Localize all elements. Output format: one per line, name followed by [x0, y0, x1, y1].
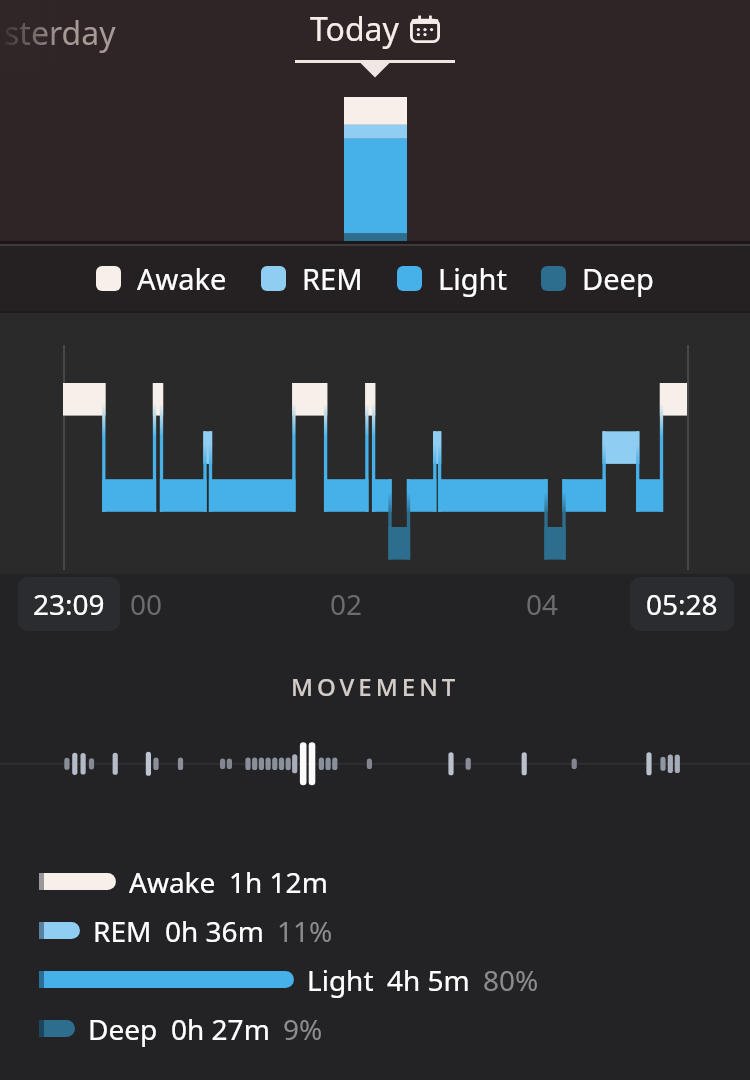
staticText: 23:09 [33, 585, 105, 623]
button[interactable]: Today [289, 7, 461, 78]
staticText: Deep [582, 259, 654, 298]
button[interactable]: Light [0, 955, 750, 1004]
other: Pick date [410, 15, 440, 43]
staticText: REM [302, 259, 363, 298]
staticText: 1h 12m [229, 863, 328, 901]
staticText: Awake [129, 863, 216, 901]
staticText: Awake [137, 259, 227, 298]
button[interactable]: REM [0, 906, 750, 955]
button[interactable]: 23:09 [18, 577, 120, 631]
staticText: 05:28 [646, 585, 718, 623]
staticText: Light [438, 259, 507, 298]
staticText: 80% [483, 961, 539, 999]
button[interactable]: Deep [541, 259, 654, 298]
staticText: 9% [283, 1010, 323, 1048]
staticText: Deep [88, 1010, 158, 1048]
staticText: 0h 27m [171, 1010, 270, 1048]
staticText: 02 [330, 585, 363, 623]
button[interactable]: REM [261, 259, 363, 298]
staticText: Today [310, 7, 399, 51]
button[interactable]: 05:28 [630, 577, 734, 631]
staticText: 11% [277, 912, 333, 950]
staticText: 0h 36m [165, 912, 264, 950]
staticText: Light [307, 961, 374, 999]
staticText: MOVEMENT [291, 670, 460, 703]
button[interactable]: Awake [96, 259, 227, 298]
staticText: REM [93, 912, 152, 950]
button[interactable]: Light [397, 259, 507, 298]
button[interactable]: Deep [0, 1004, 750, 1053]
staticText: 4h 5m [387, 961, 470, 999]
staticText: sterday [4, 11, 116, 55]
staticText: 04 [526, 585, 559, 623]
button[interactable]: Awake [0, 857, 750, 906]
staticText: 00 [130, 585, 163, 623]
